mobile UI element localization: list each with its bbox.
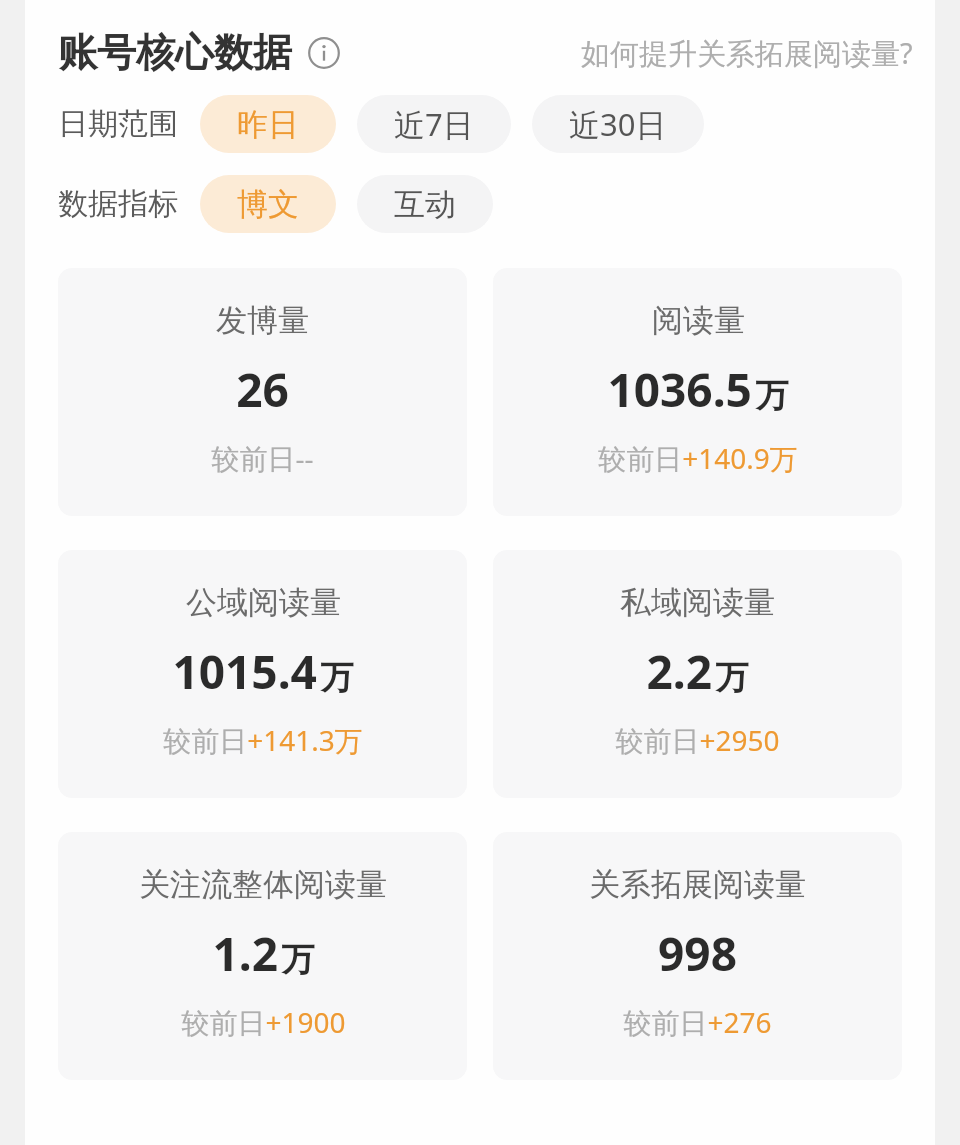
button[interactable]: 私域阅读量 [493,550,902,798]
staticText: 发博量 [216,301,309,340]
button[interactable]: 博文 [200,175,336,233]
button[interactable]: 公域阅读量 [58,550,467,798]
button[interactable]: 阅读量 [493,268,902,516]
button[interactable]: 近7日 [357,95,511,153]
button[interactable]: 发博量 [58,268,467,516]
staticText: 互动 [394,185,456,224]
staticText: 账号核心数据 [58,28,292,77]
staticText: 1036.5 万 [607,358,789,421]
staticText: 较前日+140.9万 [598,439,798,477]
staticText: 26 [236,358,289,421]
staticText: 公域阅读量 [186,583,341,622]
staticText: 较前日+2950 [615,721,780,759]
staticText: 如何提升关系拓展阅读量? [581,33,913,73]
staticText: 2.2 万 [646,640,749,703]
button[interactable]: 关注流整体阅读量 [58,832,467,1080]
staticText: 较前日+141.3万 [163,721,363,759]
staticText: 博文 [237,185,299,224]
button[interactable]: 互动 [357,175,493,233]
staticText: 昨日 [237,105,299,144]
button[interactable]: 说明 [305,34,343,72]
button[interactable]: 近30日 [532,95,704,153]
staticText: 阅读量 [652,301,745,340]
staticText: 1.2 万 [212,922,315,985]
staticText: 关系拓展阅读量 [589,865,806,904]
staticText: 数据指标 [58,185,178,223]
button[interactable]: 昨日 [200,95,336,153]
staticText: 998 [658,922,737,985]
staticText: 1015.4 万 [172,640,354,703]
button[interactable]: 如何提升关系拓展阅读量? [581,33,913,73]
staticText: 较前日+276 [623,1003,772,1041]
staticText: 较前日+1900 [181,1003,346,1041]
staticText: 较前日-- [211,439,314,477]
button[interactable]: 关系拓展阅读量 [493,832,902,1080]
staticText: 关注流整体阅读量 [139,865,387,904]
staticText: 日期范围 [58,105,178,143]
staticText: 近30日 [569,103,667,145]
staticText: 私域阅读量 [620,583,775,622]
staticText: 近7日 [394,103,474,145]
